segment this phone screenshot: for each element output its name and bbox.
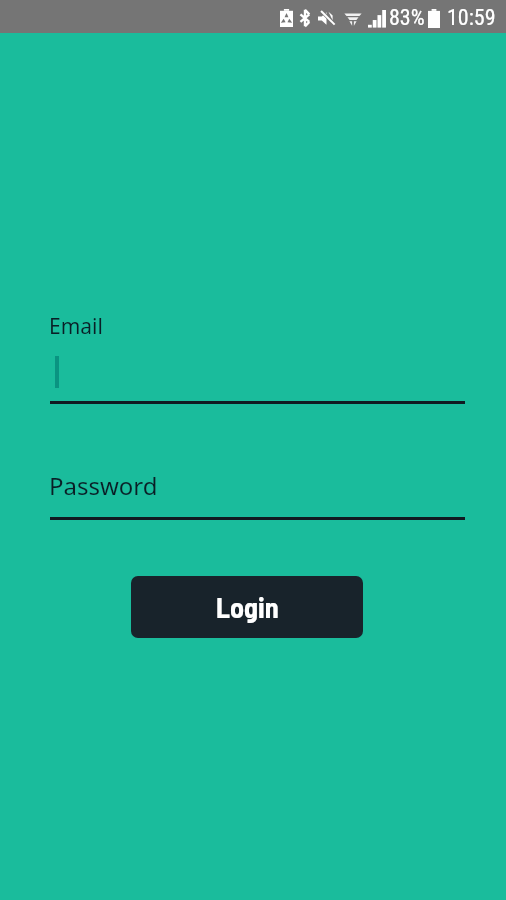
button[interactable]: Email bbox=[50, 306, 465, 404]
staticText: Password bbox=[49, 469, 158, 502]
other: Sound muted bbox=[318, 10, 335, 27]
staticText: Login bbox=[216, 590, 279, 624]
button[interactable]: Login bbox=[131, 576, 363, 638]
other: Mobile signal bbox=[368, 8, 386, 28]
button[interactable]: Password bbox=[50, 463, 465, 520]
staticText: 10:59 bbox=[447, 5, 496, 31]
other: Power saving mode bbox=[280, 9, 293, 27]
other: Bluetooth on bbox=[299, 9, 311, 27]
other: Battery 83 percent bbox=[428, 9, 440, 28]
other: Wi-Fi bbox=[344, 10, 362, 26]
staticText: 83% bbox=[389, 5, 425, 31]
staticText: Email bbox=[49, 312, 103, 341]
